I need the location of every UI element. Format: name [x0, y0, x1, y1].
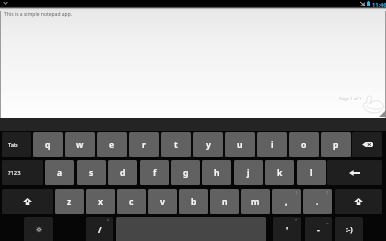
staticText: y: [206, 139, 211, 151]
staticText: This is a simple notepad app.: [4, 11, 73, 18]
button[interactable]: i: [257, 132, 287, 157]
button[interactable]: ,: [272, 189, 301, 214]
button[interactable]: s: [77, 160, 106, 185]
staticText: r: [142, 139, 146, 151]
staticText: Tab: [8, 141, 18, 149]
staticText: l: [310, 167, 313, 179]
button[interactable]: Shift: [335, 189, 382, 214]
staticText: t: [174, 139, 178, 151]
staticText: ': [286, 224, 289, 236]
button[interactable]: ?123: [2, 160, 43, 185]
button[interactable]: j: [234, 160, 263, 185]
staticText: e: [109, 139, 115, 151]
staticText: -: [317, 224, 320, 236]
staticText: a: [57, 167, 63, 179]
staticText: _: [326, 217, 329, 224]
button[interactable]: v: [148, 189, 177, 214]
button[interactable]: Tab: [2, 132, 31, 157]
staticText: w: [76, 139, 84, 151]
staticText: ?123: [8, 169, 21, 177]
button[interactable]: Shift: [2, 189, 53, 214]
button[interactable]: f: [140, 160, 169, 185]
button[interactable]: Enter: [327, 160, 382, 185]
staticText: v: [160, 196, 165, 208]
staticText: :-): [346, 225, 353, 235]
staticText: b: [191, 196, 197, 208]
staticText: Page 1 of 1: [339, 95, 362, 101]
staticText: !: [296, 189, 298, 196]
button[interactable]: :-): [335, 217, 363, 241]
staticText: ?: [326, 189, 329, 196]
button[interactable]: z: [55, 189, 84, 214]
button[interactable]: Settings: [24, 217, 53, 241]
staticText: m: [251, 196, 260, 208]
button[interactable]: t: [161, 132, 191, 157]
staticText: /: [98, 224, 102, 236]
staticText: 11:46: [372, 1, 386, 7]
staticText: z: [67, 196, 72, 208]
staticText: ": [295, 217, 298, 224]
button[interactable]: n: [210, 189, 239, 214]
button[interactable]: r: [129, 132, 159, 157]
button[interactable]: p: [321, 132, 351, 157]
button[interactable]: u: [225, 132, 255, 157]
button[interactable]: g: [171, 160, 200, 185]
button[interactable]: k: [265, 160, 294, 185]
staticText: °: [107, 217, 110, 224]
staticText: .: [316, 196, 319, 208]
button[interactable]: Backspace: [352, 132, 382, 157]
button[interactable]: b: [179, 189, 208, 214]
staticText: q: [45, 139, 51, 151]
button[interactable]: e: [97, 132, 127, 157]
button[interactable]: o: [289, 132, 319, 157]
button[interactable]: d: [108, 160, 137, 185]
staticText: o: [301, 139, 307, 151]
staticText: x: [98, 196, 103, 208]
staticText: g: [183, 167, 189, 179]
button[interactable]: q: [33, 132, 63, 157]
button[interactable]: w: [65, 132, 95, 157]
staticText: p: [333, 139, 339, 151]
button[interactable]: /: [86, 217, 113, 241]
staticText: i: [271, 139, 274, 151]
button[interactable]: m: [241, 189, 270, 214]
button[interactable]: x: [86, 189, 115, 214]
staticText: s: [89, 167, 94, 179]
staticText: n: [222, 196, 228, 208]
staticText: u: [237, 139, 243, 151]
staticText: f: [153, 167, 157, 179]
staticText: d: [120, 167, 126, 179]
button[interactable]: .: [303, 189, 332, 214]
staticText: j: [247, 167, 250, 179]
staticText: ,: [285, 196, 288, 208]
button[interactable]: l: [297, 160, 326, 185]
button[interactable]: a: [45, 160, 74, 185]
button[interactable]: -: [305, 217, 332, 241]
button[interactable]: h: [202, 160, 231, 185]
button[interactable]: c: [117, 189, 146, 214]
button[interactable]: ': [273, 217, 301, 241]
staticText: c: [129, 196, 134, 208]
button[interactable]: y: [193, 132, 223, 157]
staticText: k: [277, 167, 283, 179]
staticText: h: [214, 167, 220, 179]
